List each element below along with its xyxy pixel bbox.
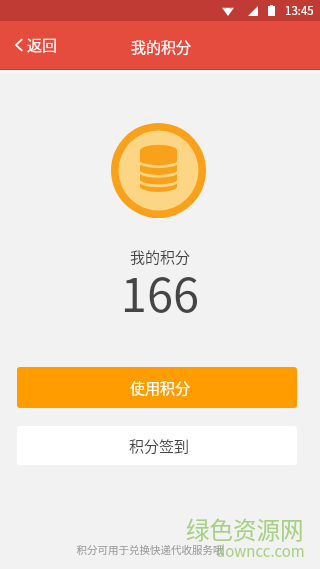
staticText: 我的积分 [131, 36, 192, 58]
staticText: 返回 [27, 34, 58, 56]
other: Points [111, 123, 206, 218]
staticText: downcc.com [216, 540, 305, 562]
staticText: 积分签到 [129, 435, 190, 457]
button[interactable]: 返回 [0, 21, 80, 68]
staticText: 使用积分 [130, 377, 191, 399]
staticText: 绿色资源网 [186, 512, 304, 546]
staticText: 166 [0, 257, 320, 325]
staticText: 我的积分 [0, 246, 320, 268]
staticText: 积分可用于兑换快递代收服务哦 [0, 542, 310, 557]
staticText: 13:45 [285, 2, 314, 19]
button[interactable]: 使用积分 [17, 367, 297, 408]
button[interactable]: 积分签到 [17, 426, 297, 465]
